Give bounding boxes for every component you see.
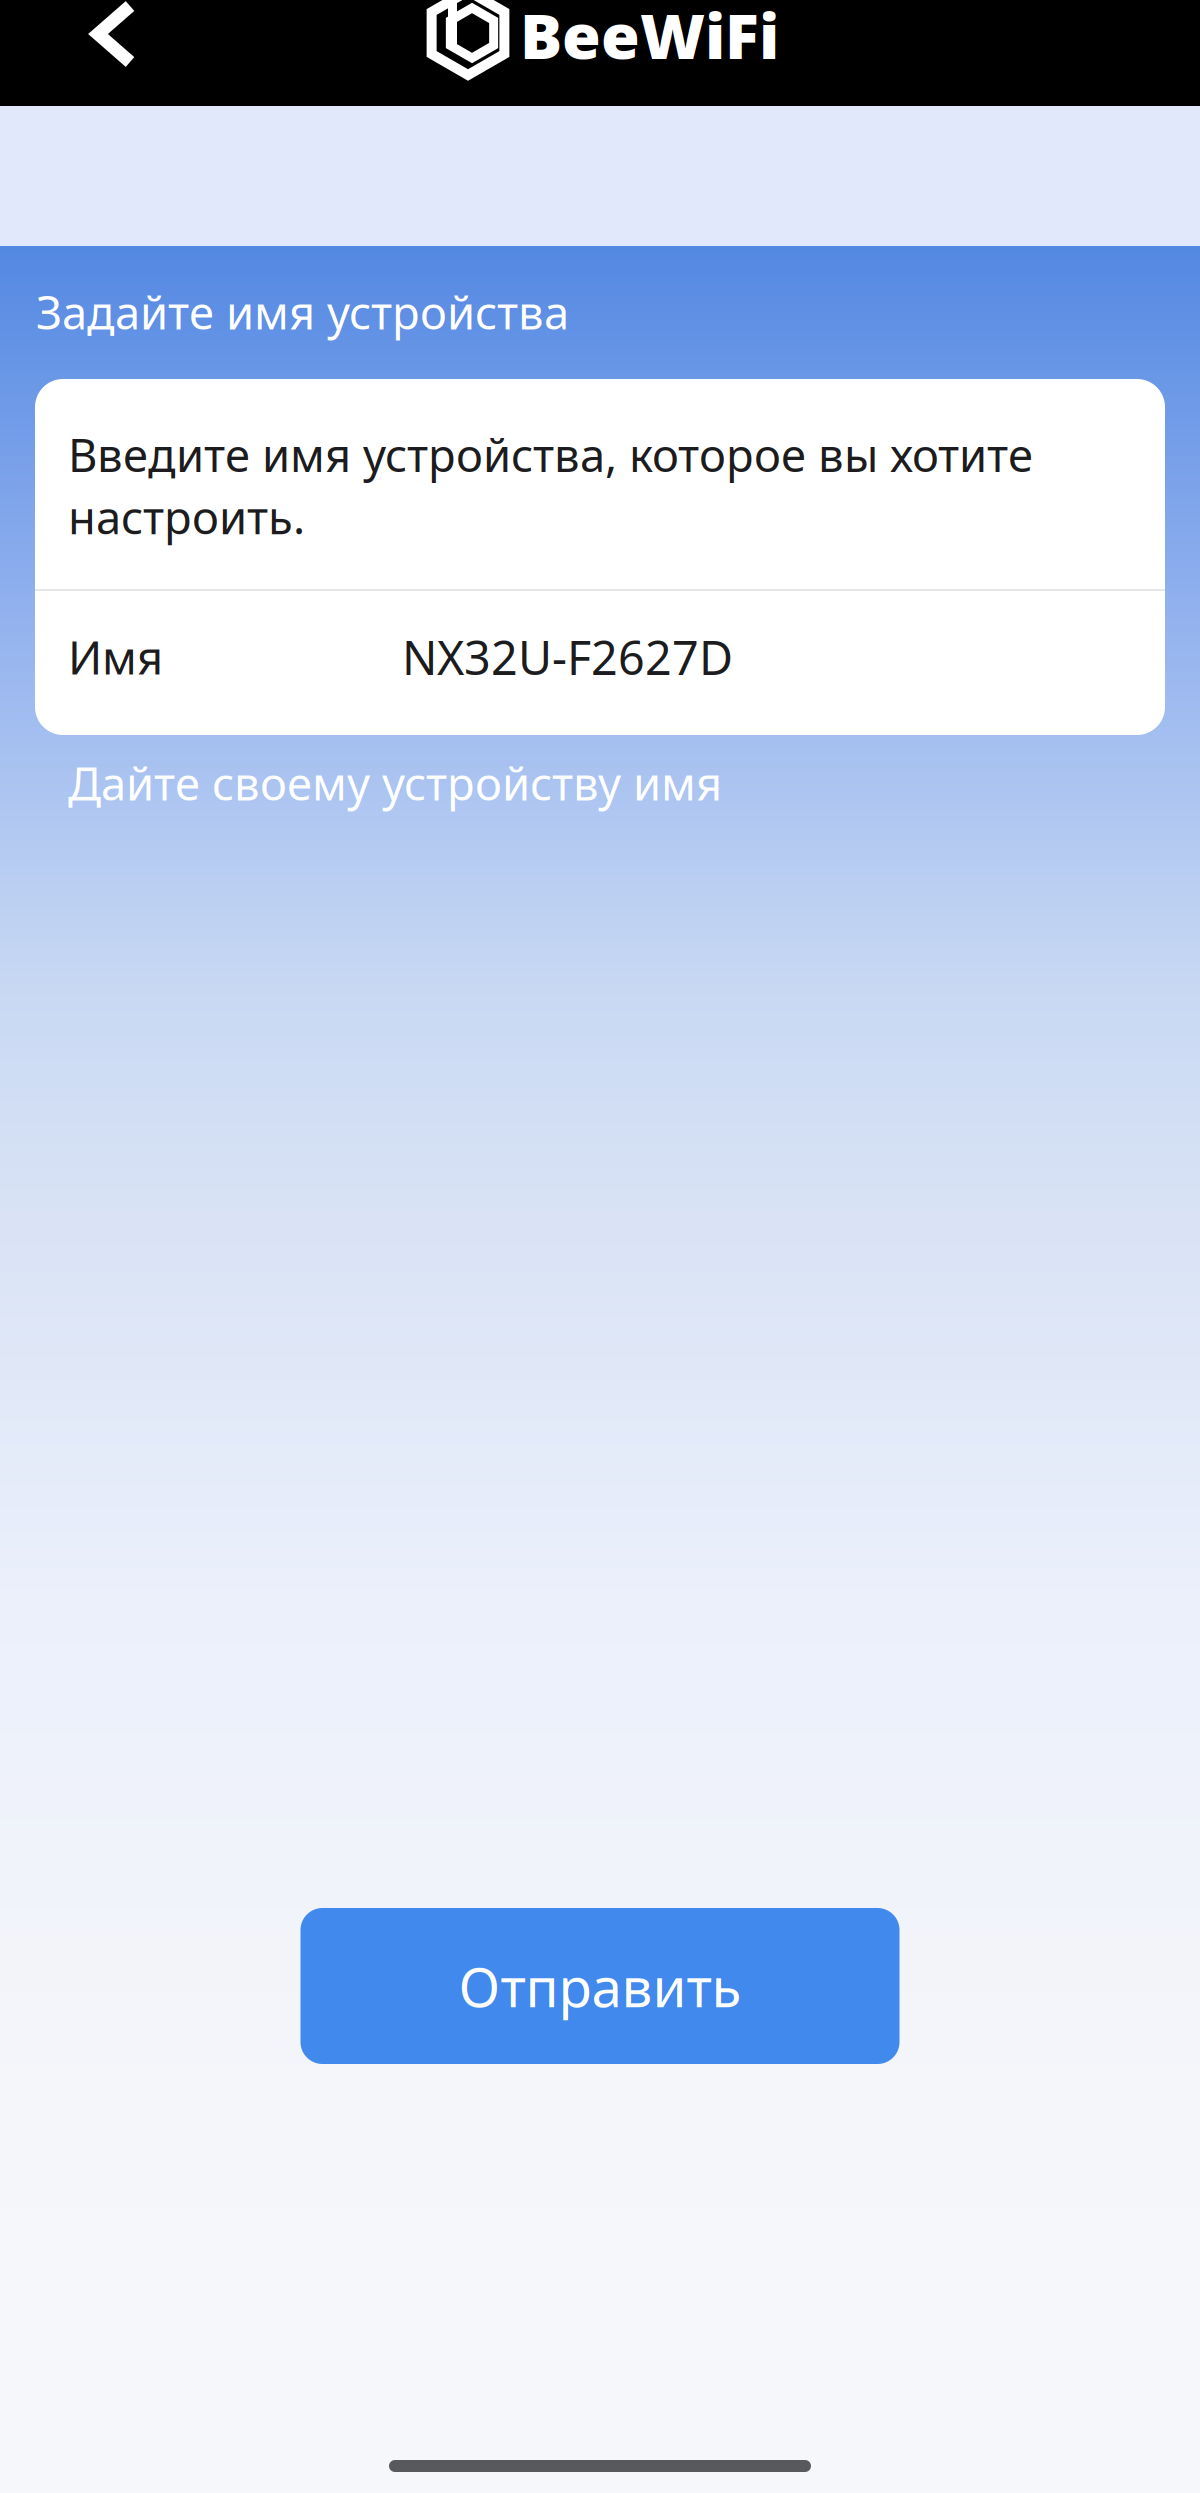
staticText: NX32U-F2627D — [402, 626, 733, 688]
staticText: BeeWiFi — [520, 0, 779, 76]
staticText: Отправить — [458, 1950, 741, 2022]
staticText: Дайте своему устройству имя — [68, 753, 722, 813]
button[interactable]: Back — [0, 0, 190, 106]
staticText: Задайте имя устройства — [36, 282, 569, 342]
staticText: Имя — [68, 627, 163, 687]
staticText: Введите имя устройства, которое вы хотит… — [68, 424, 1033, 547]
button[interactable]: Отправить — [300, 1908, 899, 2064]
